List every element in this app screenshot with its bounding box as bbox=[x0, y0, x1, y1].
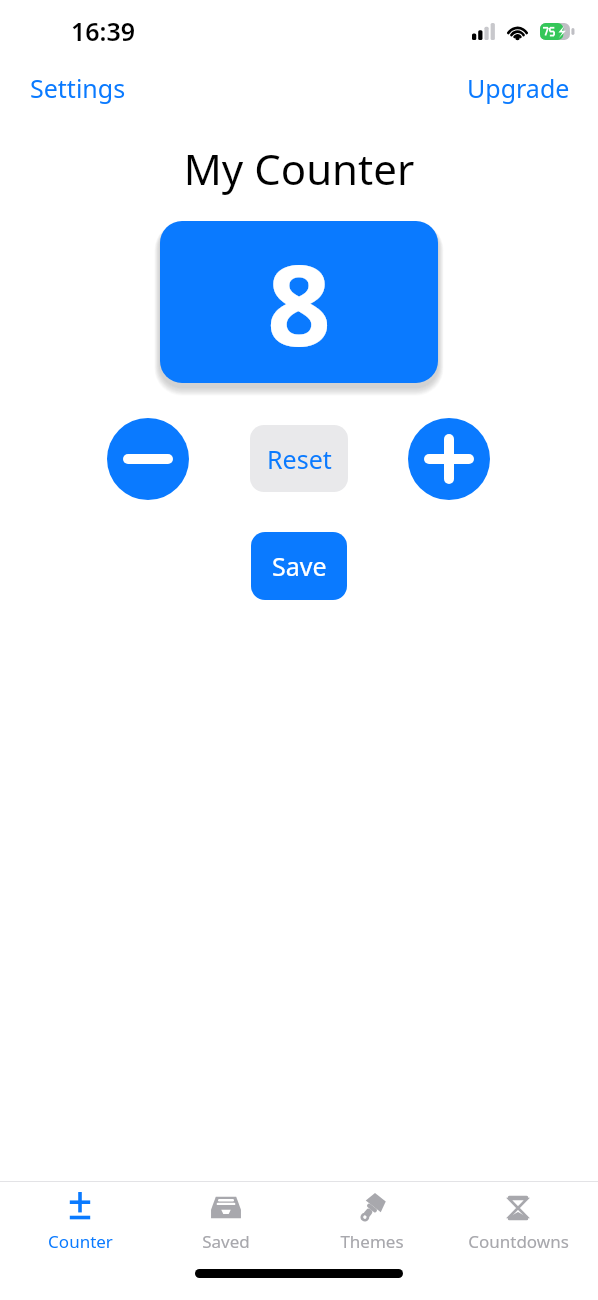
button[interactable]: 8 bbox=[160, 221, 438, 383]
staticText: Upgrade bbox=[467, 71, 570, 105]
staticText: Reset bbox=[267, 442, 332, 476]
staticText: 16:39 bbox=[71, 14, 136, 48]
staticText: Countdowns bbox=[468, 1230, 569, 1253]
button[interactable]: Upgrade bbox=[451, 65, 586, 111]
staticText: Saved bbox=[202, 1230, 250, 1253]
button[interactable]: Themes bbox=[306, 1182, 438, 1253]
staticText: Themes bbox=[340, 1230, 404, 1253]
button[interactable]: Save bbox=[251, 532, 347, 600]
button[interactable]: Increase bbox=[408, 418, 490, 500]
button[interactable]: Reset bbox=[250, 425, 348, 492]
button[interactable]: Settings bbox=[14, 65, 142, 111]
staticText: My Counter bbox=[0, 140, 598, 197]
button[interactable]: Saved bbox=[160, 1182, 292, 1253]
staticText: Counter bbox=[48, 1230, 113, 1253]
staticText: 8 bbox=[267, 226, 332, 379]
button[interactable]: Counter bbox=[14, 1182, 146, 1253]
staticText: Settings bbox=[30, 71, 126, 105]
staticText: Save bbox=[272, 549, 327, 583]
button[interactable]: Decrease bbox=[107, 418, 189, 500]
button[interactable]: Countdowns bbox=[452, 1182, 584, 1253]
